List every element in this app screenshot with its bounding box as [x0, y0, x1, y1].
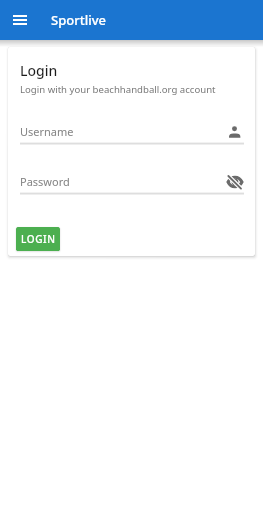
- button[interactable]: LOGIN: [16, 227, 60, 251]
- staticText: Login with your beachhandball.org accoun…: [20, 83, 216, 96]
- staticText: Login: [20, 61, 58, 80]
- staticText: LOGIN: [21, 232, 56, 246]
- button[interactable]: Password: [20, 166, 216, 193]
- button[interactable]: Username: [20, 116, 216, 143]
- staticText: Password: [20, 174, 70, 189]
- button[interactable]: Open navigation menu: [4, 4, 36, 36]
- staticText: Username: [20, 124, 74, 139]
- staticText: Sportlive: [51, 11, 106, 29]
- button[interactable]: Show password: [219, 166, 251, 198]
